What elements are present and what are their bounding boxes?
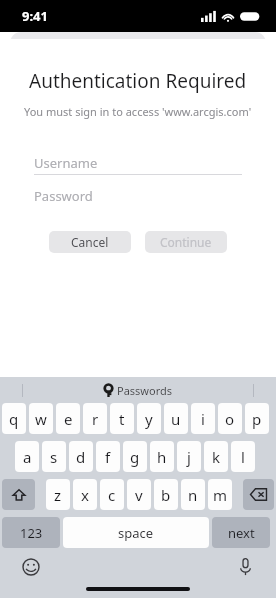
staticText: n <box>188 485 198 505</box>
staticText: a <box>23 447 32 467</box>
button[interactable]: Username <box>34 152 242 174</box>
button[interactable]: v <box>127 479 151 510</box>
button[interactable]: u <box>164 403 188 434</box>
staticText: v <box>135 485 143 505</box>
staticText: z <box>54 485 62 505</box>
button[interactable]: k <box>204 441 228 472</box>
staticText: t <box>119 409 125 429</box>
staticText: w <box>35 409 47 429</box>
button[interactable]: o <box>218 403 242 434</box>
button[interactable]: Shift <box>2 479 35 510</box>
button[interactable]: d <box>69 441 93 472</box>
button[interactable]: Passwords <box>104 383 173 398</box>
button[interactable]: e <box>56 403 80 434</box>
button[interactable]: s <box>42 441 66 472</box>
button[interactable]: Continue <box>145 231 227 253</box>
button[interactable]: y <box>137 403 161 434</box>
staticText: s <box>50 447 58 467</box>
button[interactable]: g <box>123 441 147 472</box>
staticText: c <box>108 485 116 505</box>
button[interactable]: f <box>96 441 120 472</box>
button[interactable]: l <box>231 441 255 472</box>
button[interactable]: j <box>177 441 201 472</box>
button[interactable]: h <box>150 441 174 472</box>
staticText: e <box>64 409 73 429</box>
staticText: Authentication Required <box>29 68 247 94</box>
staticText: k <box>212 447 221 467</box>
staticText: g <box>130 447 140 467</box>
button[interactable]: Password <box>34 185 242 207</box>
staticText: 123 <box>20 524 43 542</box>
button[interactable]: b <box>154 479 178 510</box>
staticText: l <box>241 447 245 467</box>
button[interactable]: c <box>100 479 124 510</box>
staticText: r <box>92 409 99 429</box>
staticText: x <box>81 485 89 505</box>
staticText: j <box>187 447 191 467</box>
staticText: m <box>213 485 228 505</box>
staticText: Password <box>34 187 93 205</box>
staticText: y <box>145 409 153 429</box>
button[interactable]: m <box>208 479 232 510</box>
button[interactable]: 123 <box>2 517 60 548</box>
button[interactable]: a <box>15 441 39 472</box>
button[interactable]: q <box>2 403 26 434</box>
staticText: h <box>157 447 167 467</box>
button[interactable]: i <box>191 403 215 434</box>
button[interactable]: n <box>181 479 205 510</box>
staticText: next <box>228 524 255 542</box>
staticText: Username <box>34 154 98 172</box>
staticText: d <box>76 447 86 467</box>
button[interactable]: r <box>83 403 107 434</box>
staticText: 9:41 <box>22 7 48 25</box>
button[interactable]: w <box>29 403 53 434</box>
button[interactable]: Emoji <box>18 554 44 580</box>
button[interactable]: space <box>63 517 209 548</box>
staticText: You must sign in to access 'www.arcgis.c… <box>24 104 252 119</box>
staticText: Continue <box>160 234 212 250</box>
staticText: Passwords <box>117 383 173 398</box>
button[interactable]: t <box>110 403 134 434</box>
staticText: Cancel <box>71 234 109 250</box>
button[interactable]: p <box>245 403 269 434</box>
staticText: p <box>252 409 262 429</box>
button[interactable]: Dictation <box>232 554 258 580</box>
staticText: i <box>201 409 205 429</box>
button[interactable]: x <box>73 479 97 510</box>
staticText: q <box>9 409 19 429</box>
staticText: f <box>105 447 111 467</box>
staticText: u <box>171 409 181 429</box>
button[interactable]: z <box>46 479 70 510</box>
button[interactable]: Backspace <box>243 479 274 510</box>
staticText: space <box>118 524 154 542</box>
staticText: b <box>161 485 171 505</box>
button[interactable]: Cancel <box>49 231 131 253</box>
button[interactable]: next <box>212 517 270 548</box>
staticText: o <box>225 409 235 429</box>
